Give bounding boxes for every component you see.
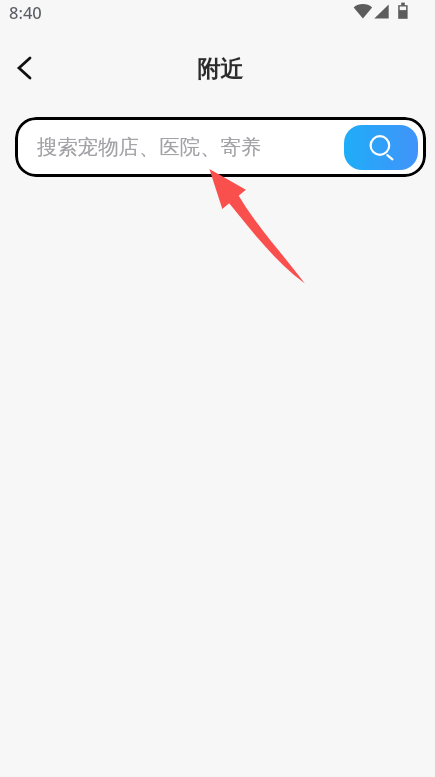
button[interactable]: 搜索宠物店、医院、寄养	[15, 117, 426, 177]
staticText: 搜索宠物店、医院、寄养	[37, 134, 262, 160]
staticText: 8:40	[9, 1, 42, 23]
staticText: 附近	[197, 55, 243, 84]
button[interactable]: Search	[344, 125, 418, 170]
button[interactable]: Back	[2, 45, 46, 89]
